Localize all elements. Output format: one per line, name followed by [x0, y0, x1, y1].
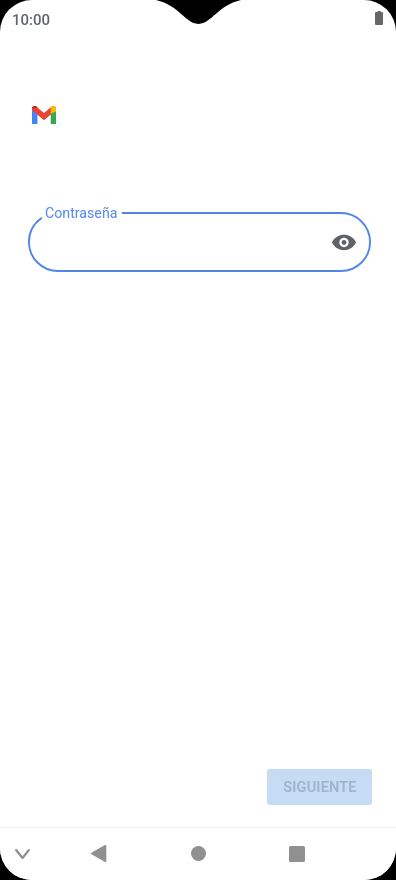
staticText: SIGUIENTE — [283, 779, 357, 796]
staticText: Contraseña — [45, 205, 118, 222]
button[interactable]: Recent apps — [275, 827, 319, 880]
button[interactable]: Home — [176, 827, 220, 880]
button[interactable]: Contraseña — [28, 212, 371, 272]
staticText: 10:00 — [12, 11, 51, 29]
button[interactable]: Hide keyboard — [0, 827, 44, 880]
button[interactable]: Mostrar contraseña — [330, 228, 358, 256]
button[interactable]: SIGUIENTE — [267, 769, 372, 805]
button[interactable]: Back — [76, 827, 120, 880]
